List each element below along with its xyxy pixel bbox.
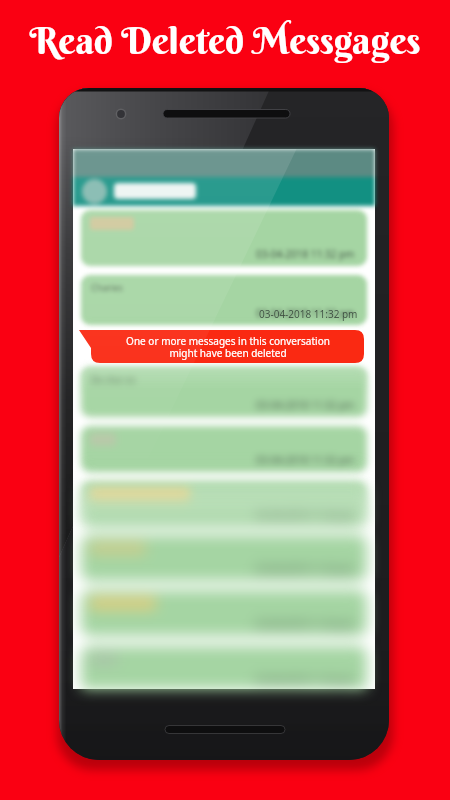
button[interactable]: 03-04-2018 11:32 pm	[81, 481, 367, 527]
button[interactable]: 03-04-2018 11:32 pm	[81, 535, 367, 581]
staticText: 03-04-2018 11:32 pm	[256, 673, 355, 687]
staticText: 03-04-2018 11:32 pm	[256, 247, 355, 261]
button[interactable]: 03-04-2018 11:32 pm	[81, 535, 367, 581]
staticText: 03-04-2018 11:32 pm	[256, 453, 355, 467]
staticText: Charies	[91, 281, 123, 293]
staticText: 03-04-2018 11:32 pm	[259, 307, 358, 321]
staticText: 03-04-2018 11:32 pm	[256, 617, 355, 631]
button[interactable]: 03-04-2018 11:32 pm	[81, 210, 367, 266]
button[interactable]: De char es	[81, 367, 367, 417]
staticText: De char es	[91, 373, 136, 385]
button[interactable]: One or more messages in this conversatio…	[91, 330, 364, 363]
staticText: 03-04-2018 11:32 pm	[256, 398, 355, 412]
button[interactable]: 03-04-2018 11:32 pm	[81, 426, 367, 472]
button[interactable]: Charies	[81, 275, 367, 325]
button[interactable]: 03-04-2018 11:32 pm	[81, 210, 367, 266]
button[interactable]: De char es	[81, 367, 367, 417]
staticText: Charies	[91, 281, 123, 293]
button[interactable]: 03-04-2018 11:32 pm	[81, 590, 367, 636]
button[interactable]: Contact avatar	[82, 179, 107, 204]
staticText: 03-04-2018 11:32 pm	[256, 562, 355, 576]
button[interactable]: 03-04-2018 11:32 pm	[81, 646, 367, 692]
staticText: Read Deleted Messgages	[29, 18, 421, 64]
staticText: 03-04-2018 11:32 pm	[256, 306, 355, 320]
button[interactable]: Contact avatar	[82, 179, 107, 204]
staticText: De char es	[91, 373, 136, 385]
button[interactable]: 03-04-2018 11:32 pm	[81, 210, 367, 266]
button[interactable]: 03-04-2018 11:32 pm	[81, 590, 367, 636]
staticText: 03-04-2018 11:32 pm	[256, 306, 355, 320]
button[interactable]: Charies	[81, 275, 367, 325]
staticText: 03-04-2018 11:32 pm	[256, 617, 355, 631]
button[interactable]: 03-04-2018 11:32 pm	[81, 426, 367, 472]
button[interactable]: 03-04-2018 11:32 pm	[81, 646, 367, 692]
staticText: One or more messages in this conversatio…	[126, 334, 330, 360]
staticText: 03-04-2018 11:32 pm	[256, 247, 355, 261]
staticText: 03-04-2018 11:32 pm	[256, 508, 355, 522]
staticText: 03-04-2018 11:32 pm	[256, 673, 355, 687]
staticText: 03-04-2018 11:32 pm	[256, 453, 355, 467]
staticText: Charies	[91, 281, 123, 293]
button[interactable]: 03-04-2018 11:32 pm	[81, 535, 367, 581]
button[interactable]: 03-04-2018 11:32 pm	[81, 426, 367, 472]
staticText: De char es	[91, 373, 136, 385]
button[interactable]: Charies	[81, 275, 367, 325]
staticText: 03-04-2018 11:32 pm	[256, 508, 355, 522]
staticText: 03-04-2018 11:32 pm	[256, 453, 355, 467]
button[interactable]: 03-04-2018 11:32 pm	[81, 646, 367, 692]
staticText: 03-04-2018 11:32 pm	[256, 508, 355, 522]
button[interactable]: Contact avatar	[82, 179, 107, 204]
staticText: 03-04-2018 11:32 pm	[256, 398, 355, 412]
staticText: 03-04-2018 11:32 pm	[256, 673, 355, 687]
staticText: 03-04-2018 11:32 pm	[256, 562, 355, 576]
staticText: 03-04-2018 11:32 pm	[256, 306, 355, 320]
staticText: 03-04-2018 11:32 pm	[256, 562, 355, 576]
staticText: 03-04-2018 11:32 pm	[256, 247, 355, 261]
button[interactable]: De char es	[81, 367, 367, 417]
staticText: 03-04-2018 11:32 pm	[256, 617, 355, 631]
button[interactable]: 03-04-2018 11:32 pm	[81, 481, 367, 527]
button[interactable]: 03-04-2018 11:32 pm	[81, 590, 367, 636]
button[interactable]: 03-04-2018 11:32 pm	[81, 481, 367, 527]
staticText: 03-04-2018 11:32 pm	[256, 398, 355, 412]
